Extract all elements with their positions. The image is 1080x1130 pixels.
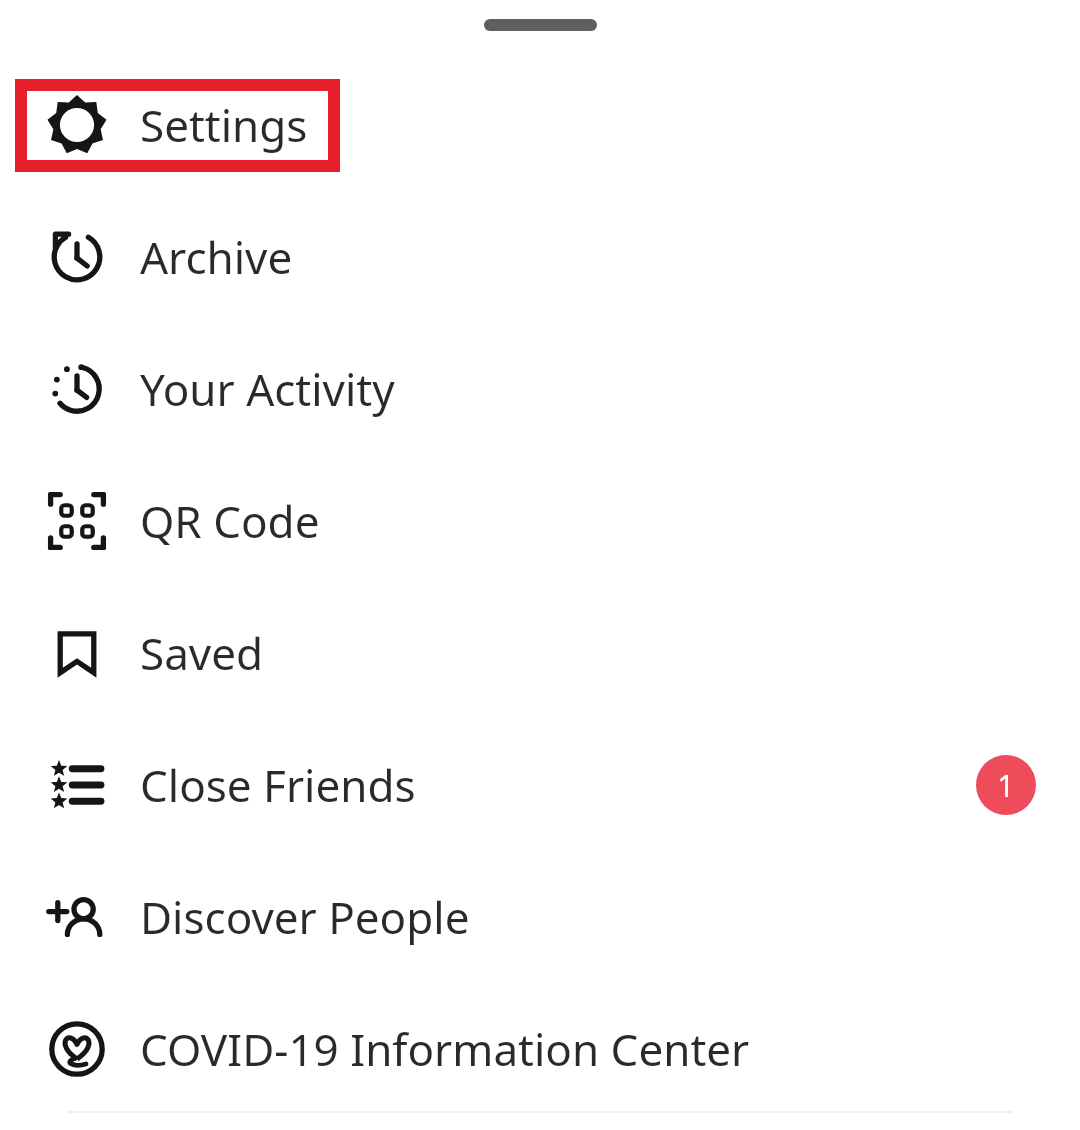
other: Settings (47, 95, 107, 155)
other: Saved (47, 623, 107, 683)
staticText: Discover People (140, 887, 470, 947)
button[interactable]: Saved (0, 587, 1080, 719)
staticText: Settings (140, 95, 308, 155)
other: Discover People (47, 887, 107, 947)
other: Close Friends (47, 755, 107, 815)
button[interactable]: Discover People (0, 851, 1080, 983)
staticText: QR Code (140, 491, 320, 551)
button[interactable]: Your Activity (0, 323, 1080, 455)
button[interactable]: Archive (0, 191, 1080, 323)
staticText: COVID-19 Information Center (140, 1019, 750, 1079)
staticText: Archive (140, 227, 293, 287)
button[interactable]: Settings (0, 59, 1080, 191)
other: Your Activity (47, 359, 107, 419)
other: QR Code (47, 491, 107, 551)
button[interactable]: Close Friends (0, 719, 1080, 851)
staticText: 1 (997, 764, 1015, 806)
staticText: Close Friends (140, 755, 416, 815)
other: Archive (47, 227, 107, 287)
button[interactable]: QR Code (0, 455, 1080, 587)
other: COVID-19 Information Center (47, 1019, 107, 1079)
staticText: Saved (140, 623, 264, 683)
button[interactable]: COVID-19 Information Center (0, 983, 1080, 1115)
staticText: Your Activity (140, 359, 395, 419)
